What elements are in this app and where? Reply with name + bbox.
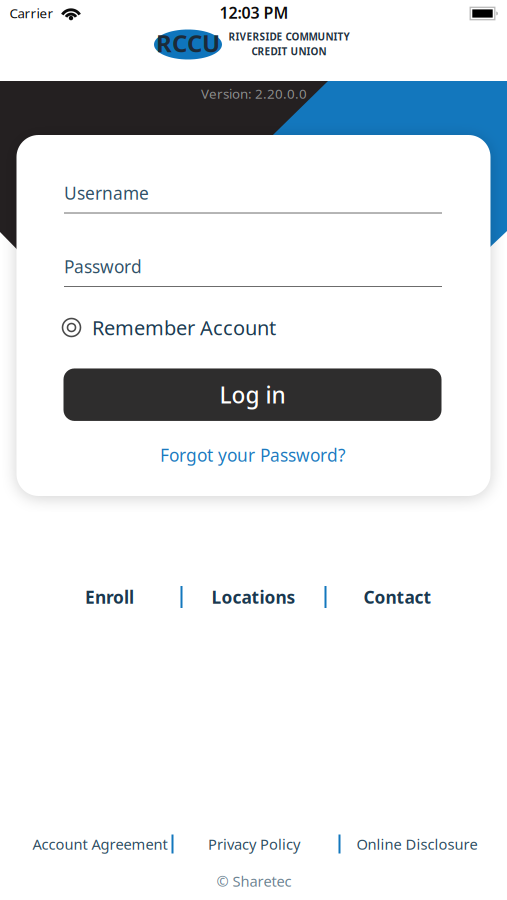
staticText: Version: 2.20.0.0 [201,85,307,102]
button[interactable]: Password [64,257,442,285]
button[interactable]: Forgot your Password? [160,443,346,466]
staticText: Log in [219,380,285,410]
button[interactable]: Username [64,183,442,211]
staticText: 12:03 PM [219,2,288,23]
staticText: Forgot your Password? [160,443,346,466]
staticText: © Sharetec [216,871,291,891]
button[interactable]: Privacy Policy [208,834,300,854]
button[interactable]: Enroll [38,585,180,608]
staticText: Username [64,181,149,204]
staticText: Contact [363,585,431,608]
staticText: RCCU [156,27,220,59]
button[interactable]: Contact [326,585,468,608]
staticText: Privacy Policy [208,834,300,854]
button[interactable]: Log in [63,368,441,421]
staticText: Enroll [85,585,134,608]
button[interactable]: Online Disclosure [356,834,477,854]
staticText: Online Disclosure [356,834,477,854]
staticText: Locations [211,585,295,608]
button[interactable]: Remember Account [62,314,440,341]
staticText: Password [64,255,142,278]
staticText: RIVERSIDE COMMUNITY [228,30,349,43]
button[interactable]: Locations [182,585,324,608]
staticText: Carrier [9,4,53,22]
staticText: CREDIT UNION [251,44,326,58]
staticText: Account Agreement [32,834,167,854]
staticText: Remember Account [92,314,276,341]
button[interactable]: Account Agreement [32,834,167,854]
